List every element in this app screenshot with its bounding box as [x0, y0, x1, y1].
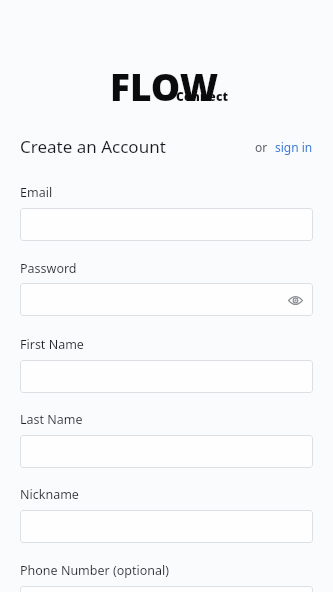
button[interactable] [20, 586, 313, 592]
button[interactable] [20, 208, 313, 241]
button[interactable] [20, 510, 313, 543]
button[interactable] [20, 435, 313, 468]
staticText: Phone Number (optional) [20, 562, 169, 579]
button[interactable] [20, 360, 313, 393]
button[interactable]: Show password [20, 283, 313, 316]
staticText: Create an Account [20, 135, 166, 158]
staticText: FLOW [110, 61, 219, 111]
staticText: sign in [275, 139, 313, 155]
staticText: Last Name [20, 411, 83, 428]
button[interactable]: Show password [283, 288, 307, 312]
button[interactable]: sign in [273, 136, 315, 158]
staticText: Nickname [20, 486, 79, 503]
staticText: Email [20, 184, 53, 201]
staticText: Connect [176, 88, 229, 104]
staticText: or [255, 139, 271, 155]
staticText: Password [20, 260, 77, 277]
staticText: First Name [20, 336, 84, 353]
